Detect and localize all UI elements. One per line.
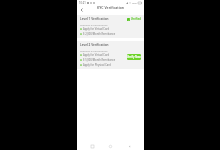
staticText: 10:21 (79, 1, 86, 5)
button[interactable]: Back (78, 6, 85, 13)
button[interactable]: Level 1 Verification (77, 15, 144, 38)
button[interactable]: Verify Now (127, 54, 141, 60)
staticText: Verify Now (127, 55, 141, 59)
button[interactable]: Home (107, 143, 114, 150)
staticText: Verified (131, 17, 141, 21)
staticText: Level 1 Verification (80, 17, 109, 21)
button[interactable]: Recents (89, 143, 96, 150)
staticText: KYC Verification (97, 5, 125, 10)
button[interactable]: Level 2 Verification (77, 41, 144, 69)
staticText: Apply for Virtual Card (83, 53, 110, 57)
staticText: $ 2,000/Month Remittance (83, 32, 116, 36)
staticText: Features & Permissions (80, 49, 108, 52)
staticText: Apply for Physical Card (83, 63, 111, 67)
staticText: Apply for Virtual Card (83, 27, 110, 31)
button[interactable]: Back (126, 143, 133, 150)
staticText: 78% (132, 1, 137, 4)
staticText: $ 5,000/Month Remittance (83, 58, 116, 62)
staticText: Level 2 Verification (80, 43, 109, 47)
staticText: Features & Permissions (80, 23, 108, 26)
